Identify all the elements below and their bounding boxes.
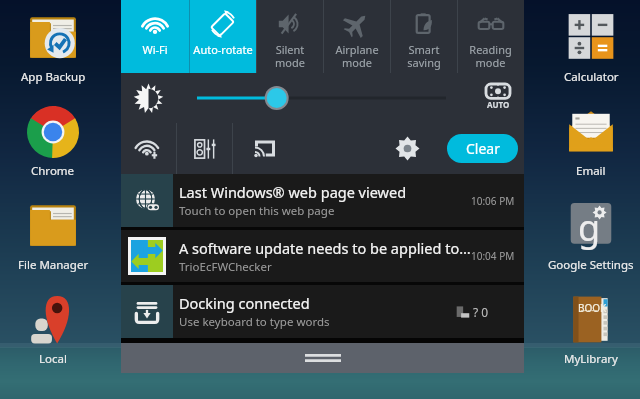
staticText: Docking connected <box>179 293 310 313</box>
button[interactable]: Close panel <box>121 343 524 373</box>
staticText: BOOK <box>578 301 607 315</box>
button[interactable]: Docking connected <box>121 285 524 338</box>
staticText: Local <box>39 351 67 367</box>
staticText: AUTO <box>487 99 510 110</box>
staticText: g <box>578 203 601 252</box>
button[interactable]: Silent mode <box>256 0 323 73</box>
staticText: 10:06 PM <box>471 194 515 208</box>
button[interactable]: Smart saving <box>390 0 457 73</box>
button[interactable]: Chrome <box>2 103 104 181</box>
button[interactable]: Screen mirroring <box>237 123 292 174</box>
staticText: App Backup <box>21 69 86 85</box>
button[interactable]: File Manager <box>2 197 104 275</box>
button[interactable]: Brightness <box>133 83 164 114</box>
button[interactable]: Calculator <box>540 9 640 87</box>
button[interactable]: Auto brightness <box>483 81 513 111</box>
button[interactable]: Auto-rotate <box>189 0 256 73</box>
staticText: MyLibrary <box>564 351 618 367</box>
button[interactable]: g <box>540 197 640 275</box>
staticText: Clear <box>466 139 500 158</box>
staticText: Google Settings <box>548 257 634 273</box>
staticText: Wi-Fi <box>142 42 168 57</box>
button[interactable]: Local <box>2 291 104 369</box>
staticText: Reading mode <box>469 42 512 70</box>
button[interactable]: Settings <box>385 123 429 174</box>
staticText: Touch to open this web page <box>179 203 335 219</box>
staticText: Smart saving <box>407 42 441 70</box>
staticText: Silent mode <box>275 42 305 70</box>
staticText: Email <box>576 163 606 179</box>
staticText: Airplane mode <box>335 42 379 70</box>
button[interactable]: A software update needs to be applied to… <box>121 230 524 282</box>
button[interactable]: Brightness slider <box>189 85 454 111</box>
button[interactable]: Airplane mode <box>323 0 390 73</box>
button[interactable]: Reading mode <box>457 0 524 73</box>
staticText: TrioEcFWChecker <box>179 259 272 275</box>
staticText: Use keyboard to type words <box>179 314 330 330</box>
button[interactable]: BOOK <box>540 291 640 369</box>
button[interactable]: Clear <box>447 134 518 163</box>
button[interactable]: Wi-Fi <box>121 0 189 73</box>
staticText: 10:04 PM <box>471 249 515 263</box>
staticText: Calculator <box>564 69 619 85</box>
staticText: File Manager <box>18 257 89 273</box>
staticText: Last Windows® web page viewed <box>179 182 407 202</box>
button[interactable]: Last Windows® web page viewed <box>121 174 524 227</box>
button[interactable]: Email <box>540 103 640 181</box>
staticText: Chrome <box>31 163 75 179</box>
button[interactable]: App Backup <box>2 9 104 87</box>
staticText: ? 0 <box>473 304 489 320</box>
staticText: Auto-rotate <box>193 42 253 57</box>
button[interactable]: Wi-Fi settings <box>121 123 176 174</box>
button[interactable]: Sound settings <box>177 123 232 174</box>
staticText: A software update needs to be applied to… <box>179 238 472 258</box>
